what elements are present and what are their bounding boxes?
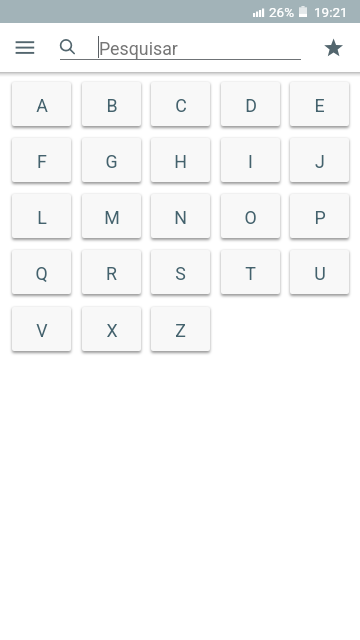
- staticText: X: [106, 320, 118, 341]
- button[interactable]: T: [221, 250, 280, 294]
- button[interactable]: J: [290, 138, 349, 182]
- staticText: S: [175, 263, 186, 284]
- button[interactable]: N: [151, 194, 210, 238]
- button[interactable]: C: [151, 82, 210, 126]
- button[interactable]: X: [82, 307, 141, 351]
- button[interactable]: E: [290, 82, 349, 126]
- staticText: 19:21: [314, 4, 348, 20]
- staticText: N: [174, 207, 187, 228]
- button[interactable]: H: [151, 138, 210, 182]
- button[interactable]: O: [221, 194, 280, 238]
- staticText: V: [36, 320, 48, 341]
- staticText: P: [314, 207, 326, 228]
- staticText: R: [106, 263, 117, 284]
- staticText: T: [245, 263, 256, 284]
- button[interactable]: A: [12, 82, 71, 126]
- staticText: U: [314, 263, 326, 284]
- staticText: M: [104, 207, 120, 228]
- button[interactable]: V: [12, 307, 71, 351]
- staticText: B: [106, 95, 118, 116]
- staticText: Q: [35, 263, 48, 284]
- button[interactable]: U: [290, 250, 349, 294]
- button[interactable]: Search: [50, 31, 84, 65]
- staticText: C: [175, 95, 187, 116]
- button[interactable]: I: [221, 138, 280, 182]
- staticText: H: [174, 151, 187, 172]
- staticText: Pesquisar: [99, 38, 178, 59]
- button[interactable]: Favorites: [317, 31, 351, 65]
- staticText: O: [244, 207, 257, 228]
- staticText: D: [245, 95, 257, 116]
- button[interactable]: B: [82, 82, 141, 126]
- staticText: F: [37, 151, 47, 172]
- staticText: L: [37, 207, 47, 228]
- staticText: 26%: [269, 4, 295, 20]
- staticText: Z: [175, 320, 186, 341]
- button[interactable]: Q: [12, 250, 71, 294]
- button[interactable]: M: [82, 194, 141, 238]
- button[interactable]: G: [82, 138, 141, 182]
- button[interactable]: F: [12, 138, 71, 182]
- staticText: J: [315, 151, 325, 172]
- staticText: E: [314, 95, 325, 116]
- button[interactable]: S: [151, 250, 210, 294]
- button[interactable]: D: [221, 82, 280, 126]
- staticText: G: [105, 151, 118, 172]
- staticText: I: [248, 151, 253, 172]
- button[interactable]: Z: [151, 307, 210, 351]
- button[interactable]: Menu: [4, 29, 44, 67]
- button[interactable]: R: [82, 250, 141, 294]
- staticText: A: [36, 95, 48, 116]
- button[interactable]: P: [290, 194, 349, 238]
- button[interactable]: L: [12, 194, 71, 238]
